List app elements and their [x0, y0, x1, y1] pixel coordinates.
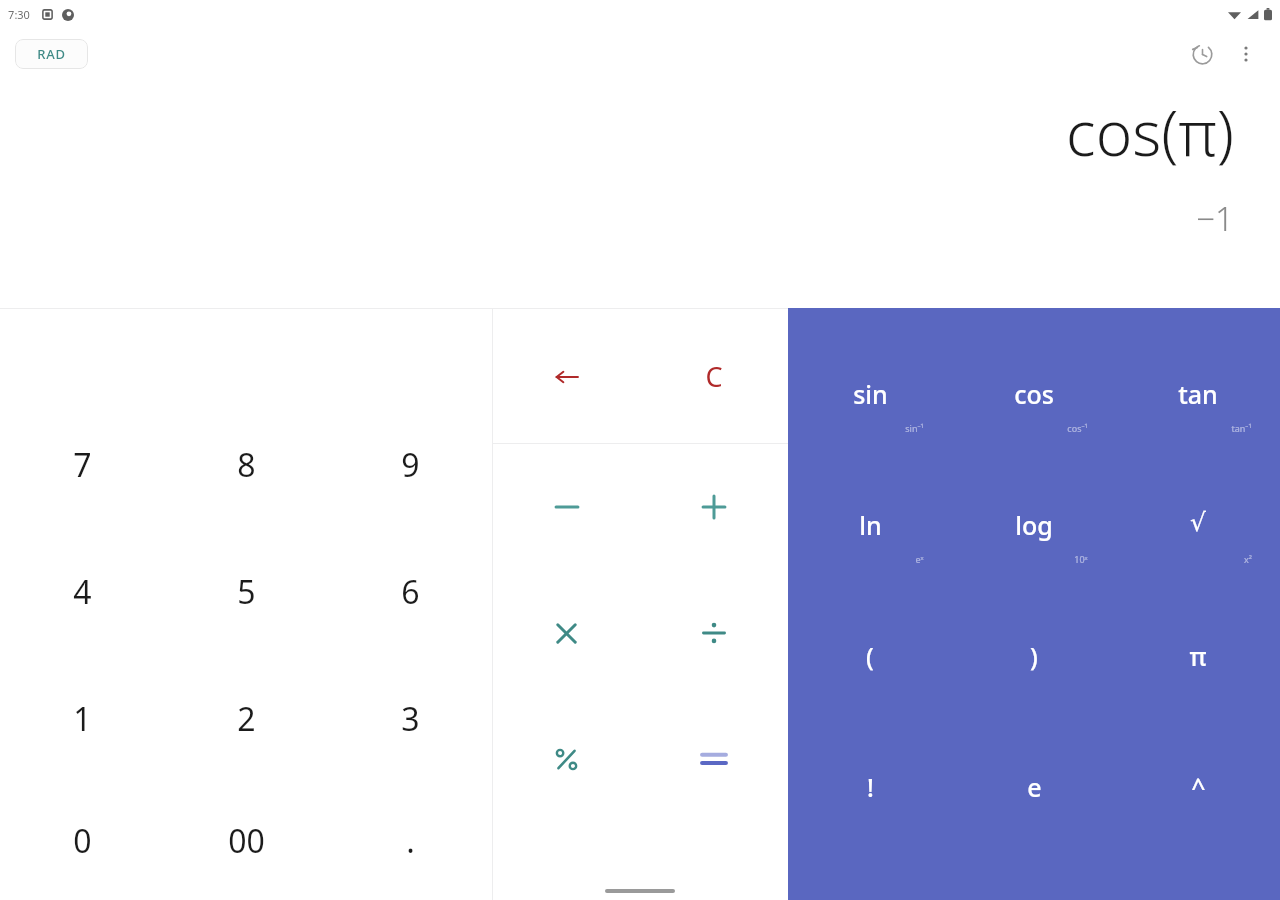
- button[interactable]: (: [788, 626, 952, 757]
- button[interactable]: ln: [788, 495, 952, 626]
- button[interactable]: sin: [788, 364, 952, 495]
- button[interactable]: √: [1116, 495, 1280, 626]
- staticText: sin⁻¹: [905, 422, 924, 434]
- staticText: e: [1027, 770, 1042, 804]
- button[interactable]: Operator: [640, 696, 788, 822]
- staticText: C: [705, 358, 723, 395]
- button[interactable]: ^: [1116, 757, 1280, 888]
- staticText: cos(π): [1066, 90, 1234, 174]
- staticText: 5: [237, 570, 256, 614]
- staticText: 9: [401, 443, 420, 487]
- staticText: 2: [237, 697, 256, 741]
- button[interactable]: tan: [1116, 364, 1280, 495]
- staticText: 4: [73, 570, 92, 614]
- button[interactable]: Operator: [493, 309, 640, 444]
- button[interactable]: Operator: [640, 309, 788, 444]
- staticText: ln: [859, 508, 882, 542]
- button[interactable]: cos: [952, 364, 1116, 495]
- button[interactable]: RAD: [15, 39, 88, 69]
- staticText: 8: [237, 443, 256, 487]
- staticText: x²: [1244, 553, 1252, 565]
- button[interactable]: ): [952, 626, 1116, 757]
- button[interactable]: .: [328, 782, 492, 900]
- staticText: log: [1015, 508, 1053, 542]
- button[interactable]: History: [1180, 32, 1224, 76]
- button[interactable]: Operator: [493, 444, 640, 570]
- button[interactable]: 2: [164, 655, 328, 782]
- staticText: cos⁻¹: [1067, 422, 1088, 434]
- button[interactable]: Operator: [493, 696, 640, 822]
- button[interactable]: 5: [164, 528, 328, 655]
- button[interactable]: 0: [0, 782, 164, 900]
- staticText: 7: [73, 443, 92, 487]
- staticText: tan⁻¹: [1231, 422, 1252, 434]
- button[interactable]: 9: [328, 401, 492, 528]
- staticText: 7:30: [8, 7, 30, 22]
- staticText: 1: [73, 697, 92, 741]
- staticText: (: [866, 639, 874, 673]
- button[interactable]: 4: [0, 528, 164, 655]
- button[interactable]: Operator: [640, 444, 788, 570]
- button[interactable]: Operator: [493, 570, 640, 696]
- staticText: 00: [228, 819, 265, 863]
- button[interactable]: !: [788, 757, 952, 888]
- button[interactable]: e: [952, 757, 1116, 888]
- staticText: 10ˣ: [1074, 553, 1088, 565]
- button[interactable]: Operator: [640, 570, 788, 696]
- staticText: ^: [1191, 770, 1206, 804]
- button[interactable]: 3: [328, 655, 492, 782]
- staticText: 0: [73, 819, 92, 863]
- staticText: √: [1190, 508, 1206, 537]
- staticText: ): [1030, 639, 1038, 673]
- staticText: −1: [1196, 196, 1234, 241]
- staticText: cos: [1014, 377, 1054, 411]
- button[interactable]: 00: [164, 782, 328, 900]
- staticText: sin: [853, 377, 888, 411]
- button[interactable]: π: [1116, 626, 1280, 757]
- staticText: .: [406, 819, 415, 863]
- staticText: 3: [401, 697, 420, 741]
- staticText: RAD: [37, 45, 66, 63]
- button[interactable]: More options: [1224, 32, 1268, 76]
- button[interactable]: log: [952, 495, 1116, 626]
- button[interactable]: 7: [0, 401, 164, 528]
- staticText: eˣ: [915, 553, 924, 565]
- staticText: tan: [1178, 377, 1218, 411]
- button[interactable]: 8: [164, 401, 328, 528]
- staticText: !: [867, 770, 874, 804]
- button[interactable]: 6: [328, 528, 492, 655]
- staticText: 6: [401, 570, 420, 614]
- button[interactable]: 1: [0, 655, 164, 782]
- staticText: π: [1189, 639, 1207, 673]
